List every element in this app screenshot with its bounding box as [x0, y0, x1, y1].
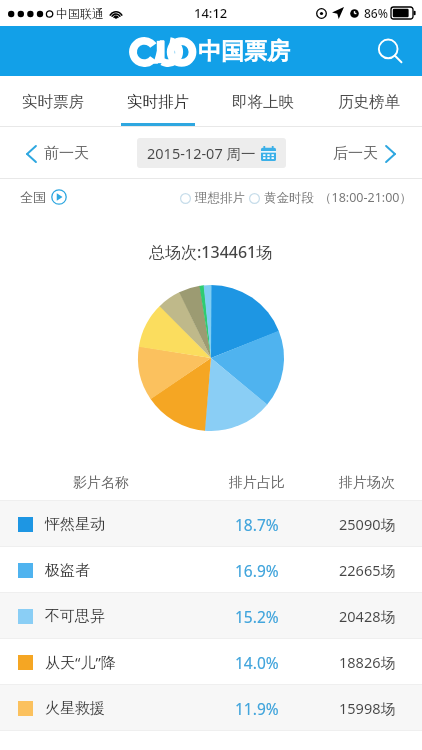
staticText: 总场次:134461场 [149, 241, 273, 263]
staticText: 实时排片 [127, 92, 189, 112]
staticText: 实时票房 [22, 92, 84, 112]
staticText: 黄金时段 [264, 190, 314, 206]
button[interactable]: 即将上映 [210, 76, 316, 127]
staticText: 影片名称 [73, 474, 129, 492]
button[interactable]: 前一天 [22, 140, 93, 167]
staticText: 极盗者 [45, 561, 90, 580]
staticText: 前一天 [44, 144, 89, 163]
button[interactable]: 火星救援 [0, 685, 422, 731]
staticText: 2015-12-07 周一 [147, 143, 256, 163]
button[interactable]: 理想排片 [180, 190, 245, 206]
staticText: 后一天 [333, 144, 378, 163]
staticText: 14:12 [194, 4, 228, 22]
staticText: 14.0% [235, 652, 279, 673]
staticText: 排片场次 [339, 474, 395, 492]
button[interactable]: 黄金时段 [249, 190, 314, 206]
staticText: 从天“儿”降 [45, 652, 116, 672]
staticText: 中国联通 [56, 6, 104, 21]
staticText: 15998场 [339, 698, 395, 718]
staticText: 历史榜单 [338, 92, 400, 112]
staticText: 理想排片 [195, 190, 245, 206]
button[interactable]: 全国 [20, 189, 67, 205]
button[interactable]: 极盗者 [0, 547, 422, 593]
staticText: 排片占比 [229, 474, 285, 492]
staticText: （18:00-21:00） [319, 189, 412, 206]
staticText: 中国票房 [198, 37, 290, 66]
staticText: 86% [364, 5, 388, 21]
staticText: 即将上映 [232, 92, 294, 112]
staticText: 11.9% [235, 698, 279, 719]
staticText: 不可思异 [45, 607, 105, 626]
staticText: 16.9% [235, 560, 279, 581]
staticText: 全国 [20, 189, 46, 205]
button[interactable]: 实时排片 [105, 76, 210, 127]
staticText: 15.2% [235, 606, 279, 627]
button[interactable]: 怦然星动 [0, 501, 422, 547]
staticText: 18.7% [235, 514, 279, 535]
staticText: 18826场 [339, 652, 395, 672]
staticText: 怦然星动 [45, 515, 105, 534]
button[interactable]: 历史榜单 [316, 76, 422, 127]
button[interactable]: 从天“儿”降 [0, 639, 422, 685]
button[interactable]: Search [370, 31, 410, 71]
staticText: 火星救援 [45, 699, 105, 718]
staticText: 25090场 [339, 514, 395, 534]
staticText: 22665场 [339, 560, 395, 580]
button[interactable]: 后一天 [329, 140, 400, 167]
button[interactable]: 2015-12-07 周一 [137, 138, 286, 168]
button[interactable]: 不可思异 [0, 593, 422, 639]
button[interactable]: 实时票房 [0, 76, 105, 127]
staticText: 20428场 [339, 606, 395, 626]
